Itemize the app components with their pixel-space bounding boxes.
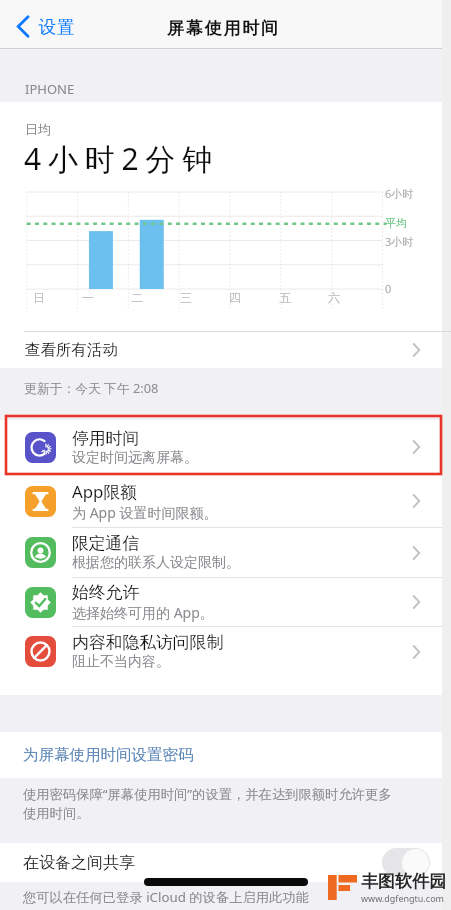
staticText: 阻止不当内容。 — [72, 653, 170, 671]
staticText: 4小时2分钟 — [24, 138, 220, 179]
staticText: 更新于：今天 下午 2:08 — [24, 379, 159, 396]
button[interactable]: Toggle share across devices — [382, 848, 430, 877]
button[interactable]: 始终允许 — [0, 578, 442, 626]
staticText: 您可以在任何已登录 iCloud 的设备上启用此功能 — [23, 888, 309, 906]
staticText: 在设备之间共享 — [23, 853, 135, 873]
button[interactable]: App限额 — [0, 475, 442, 527]
staticText: 始终允许 — [72, 582, 140, 603]
staticText: 0 — [385, 281, 392, 296]
staticText: 六 — [328, 290, 340, 305]
staticText: 使用密码保障“屏幕使用时间”的设置，并在达到限额时允许更多 使用时间。 — [23, 785, 392, 822]
staticText: www.dgfengtu.com — [361, 892, 445, 904]
staticText: 3小时 — [385, 234, 414, 249]
staticText: 内容和隐私访问限制 — [72, 632, 224, 653]
staticText: 日 — [33, 290, 45, 305]
staticText: 根据您的联系人设定限制。 — [72, 554, 240, 572]
button[interactable]: 设置 — [17, 4, 75, 49]
staticText: 平均 — [385, 216, 407, 230]
staticText: 设置 — [38, 16, 75, 38]
button[interactable]: 在设备之间共享 — [0, 843, 442, 882]
staticText: 丰图软件园 — [361, 871, 446, 892]
staticText: 为 App 设置时间限额。 — [72, 503, 218, 522]
staticText: 五 — [279, 290, 291, 305]
staticText: 二 — [131, 290, 143, 305]
staticText: 屏幕使用时间 — [167, 18, 280, 39]
staticText: 三 — [180, 290, 192, 305]
button[interactable]: 为屏幕使用时间设置密码 — [0, 732, 442, 778]
staticText: 一 — [82, 290, 94, 305]
button[interactable]: 内容和隐私访问限制 — [0, 627, 442, 676]
staticText: 限定通信 — [72, 533, 140, 554]
staticText: 四 — [229, 290, 241, 305]
staticText: 查看所有活动 — [25, 340, 118, 360]
staticText: 选择始终可用的 App。 — [72, 603, 214, 622]
staticText: 6小时 — [385, 186, 414, 201]
button[interactable]: 查看所有活动 — [0, 332, 442, 368]
staticText: 停用时间 — [72, 428, 140, 449]
staticText: 设定时间远离屏幕。 — [72, 449, 198, 467]
staticText: 为屏幕使用时间设置密码 — [23, 745, 194, 765]
button[interactable]: 限定通信 — [0, 528, 442, 577]
staticText: App限额 — [72, 480, 137, 503]
staticText: 日均 — [25, 121, 51, 137]
staticText: IPHONE — [25, 80, 75, 96]
button[interactable]: 停用时间 — [0, 420, 442, 474]
